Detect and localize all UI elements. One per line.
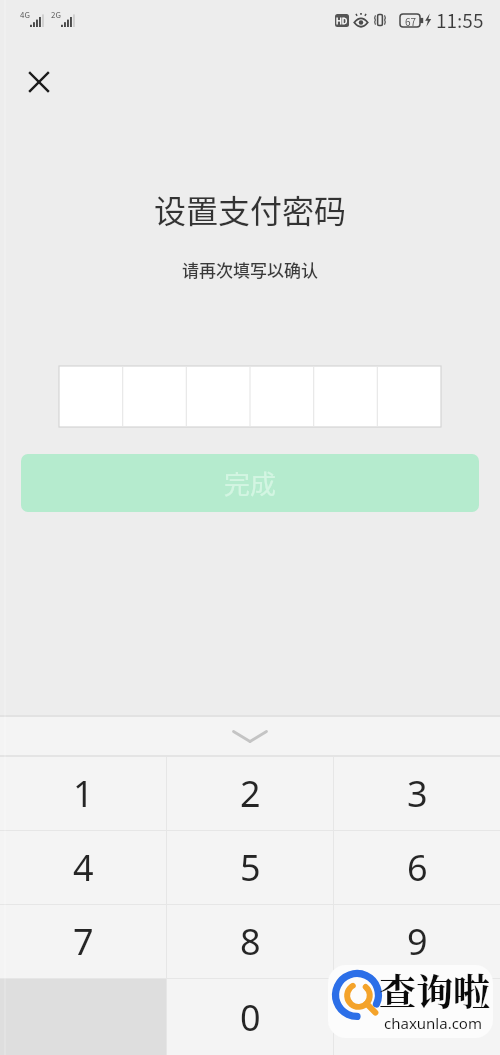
staticText: chaxunla.com	[384, 1013, 482, 1033]
button[interactable]: 9	[334, 905, 500, 978]
button[interactable]: 8	[167, 905, 333, 978]
staticText: 设置支付密码	[0, 186, 500, 232]
staticText: 6	[407, 843, 428, 892]
button[interactable]: 7	[0, 905, 166, 978]
staticText: 1	[73, 769, 94, 818]
button[interactable]: 3	[334, 757, 500, 830]
staticText: 5	[240, 843, 261, 892]
staticText: 2G	[51, 9, 61, 21]
button[interactable]: Close	[15, 58, 62, 105]
button[interactable]: Hide keyboard	[220, 719, 280, 753]
button[interactable]: 6	[334, 831, 500, 904]
staticText: 3	[407, 769, 428, 818]
staticText: 0	[240, 993, 261, 1042]
button[interactable]: Delete	[334, 979, 500, 1055]
staticText: 8	[240, 917, 261, 966]
staticText: 2	[240, 769, 261, 818]
staticText: 11:55	[436, 6, 484, 34]
staticText: 4G	[20, 9, 30, 21]
staticText: 完成	[224, 464, 277, 502]
staticText: 9	[407, 917, 428, 966]
staticText: 4	[73, 843, 94, 892]
button[interactable]: 2	[167, 757, 333, 830]
button[interactable]: 完成	[21, 454, 479, 512]
staticText: 7	[73, 917, 94, 966]
staticText: 请再次填写以确认	[0, 257, 500, 282]
staticText: 查询啦	[379, 965, 490, 1016]
button[interactable]: 0	[167, 979, 333, 1055]
button[interactable]: 4	[0, 831, 166, 904]
staticText: 67	[405, 14, 417, 27]
button[interactable]: 5	[167, 831, 333, 904]
button[interactable]: 1	[0, 757, 166, 830]
staticText: HD	[336, 15, 348, 27]
